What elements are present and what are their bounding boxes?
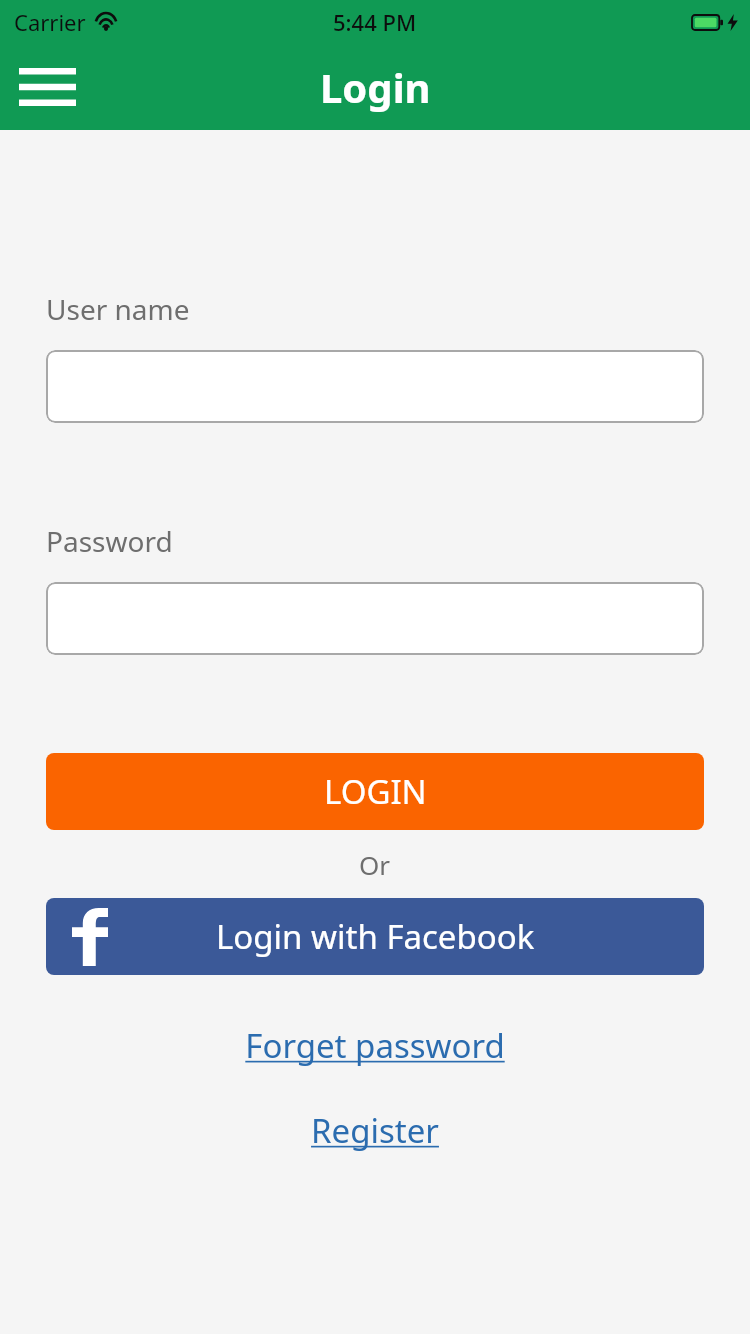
button[interactable]: User name xyxy=(46,350,704,423)
staticText: LOGIN xyxy=(324,769,427,814)
staticText: Login xyxy=(320,60,431,114)
button[interactable]: Forget password xyxy=(231,1017,519,1074)
staticText: 5:44 PM xyxy=(333,7,417,37)
button[interactable]: Password xyxy=(46,582,704,655)
staticText: Login with Facebook xyxy=(216,914,535,959)
staticText: Or xyxy=(359,847,391,882)
staticText: Forget password xyxy=(245,1023,505,1068)
staticText: Password xyxy=(46,522,173,560)
button[interactable]: Login with Facebook xyxy=(46,898,704,975)
button[interactable]: LOGIN xyxy=(46,753,704,830)
button[interactable]: Open navigation menu xyxy=(12,59,82,115)
staticText: Register xyxy=(311,1108,439,1153)
button[interactable]: Register xyxy=(297,1102,453,1159)
staticText: Carrier xyxy=(14,7,86,37)
staticText: User name xyxy=(46,290,190,328)
